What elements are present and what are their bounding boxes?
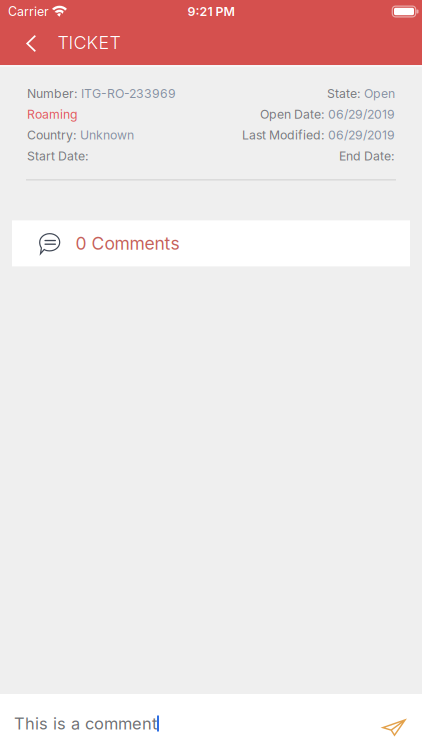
staticText: Carrier <box>8 4 49 19</box>
staticText: Unknown <box>77 128 134 142</box>
staticText: This is a comment <box>14 714 157 733</box>
staticText: State: <box>327 86 361 101</box>
staticText: Start Date: <box>27 148 89 163</box>
button[interactable]: Send <box>374 705 414 742</box>
button[interactable]: 0 Comments <box>12 220 410 266</box>
staticText: End Date: <box>339 148 395 163</box>
staticText: 0 Comments <box>75 233 179 254</box>
staticText: TICKET <box>57 32 120 53</box>
staticText: Roaming <box>27 107 78 122</box>
staticText: ITG-RO-233969 <box>78 86 176 101</box>
staticText: 06/29/2019 <box>325 107 395 122</box>
staticText: Country: <box>27 128 77 142</box>
staticText: Open <box>361 86 395 101</box>
staticText: Open Date: <box>260 107 325 122</box>
button[interactable]: Back <box>0 22 57 64</box>
staticText: 06/29/2019 <box>325 128 395 142</box>
staticText: Last Modified: <box>242 128 325 142</box>
staticText: 9:21 PM <box>187 4 234 19</box>
staticText: Number: <box>27 86 78 101</box>
